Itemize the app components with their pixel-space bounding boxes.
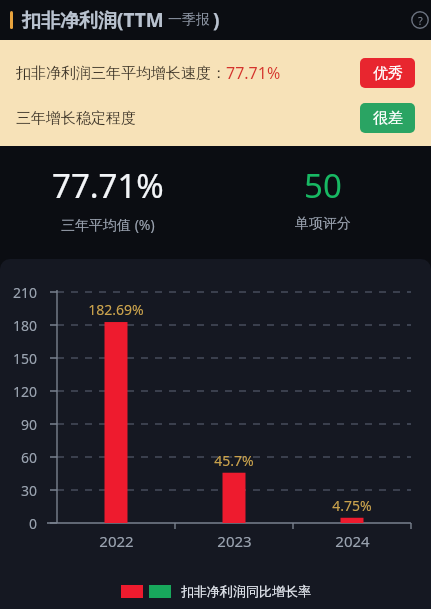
- staticText: 单项评分: [295, 215, 351, 233]
- button[interactable]: 扣非净利润三年平均增长速度：: [0, 58, 431, 88]
- button[interactable]: 很差: [360, 103, 415, 133]
- staticText: 182.69%: [88, 300, 144, 319]
- staticText: 90: [21, 415, 38, 434]
- button[interactable]: 77.71%: [0, 163, 215, 234]
- staticText: 77.71%: [52, 163, 164, 208]
- staticText: 扣非净利润三年平均增长速度：: [16, 64, 226, 83]
- staticText: 0: [29, 514, 38, 533]
- staticText: 很差: [373, 109, 403, 128]
- staticText: ?: [418, 13, 423, 28]
- staticText: 60: [21, 448, 38, 467]
- button[interactable]: 优秀: [360, 58, 415, 88]
- staticText: 一季报: [168, 11, 210, 29]
- staticText: 三年增长稳定程度: [16, 109, 136, 128]
- staticText: 2023: [217, 531, 252, 551]
- staticText: 180: [13, 316, 38, 335]
- staticText: 77.71%: [226, 62, 281, 84]
- staticText: 2022: [99, 531, 134, 551]
- staticText: 50: [304, 163, 342, 208]
- button[interactable]: 三年增长稳定程度: [0, 103, 431, 133]
- staticText: 扣非净利润(TTM: [22, 7, 164, 33]
- staticText: 30: [21, 481, 38, 500]
- staticText: 优秀: [373, 64, 403, 83]
- button[interactable]: 扣非净利润同比增长率: [121, 583, 311, 599]
- staticText: 三年平均值 (%): [61, 215, 155, 234]
- button[interactable]: 50: [215, 163, 431, 233]
- staticText: 2024: [335, 531, 370, 551]
- staticText: 120: [13, 382, 38, 401]
- staticText: ): [213, 7, 220, 33]
- button[interactable]: Help: [408, 8, 431, 32]
- staticText: 4.75%: [332, 496, 372, 515]
- staticText: 150: [13, 349, 38, 368]
- staticText: 45.7%: [214, 451, 254, 470]
- staticText: 210: [13, 283, 38, 302]
- staticText: 扣非净利润同比增长率: [181, 583, 311, 599]
